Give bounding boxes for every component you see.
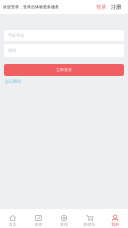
staticText: 我的: [111, 222, 119, 227]
button[interactable]: 发布: [26, 209, 51, 228]
button[interactable]: 注册: [111, 4, 121, 10]
staticText: 手机号码: [8, 33, 24, 38]
button[interactable]: 发现: [51, 209, 77, 228]
button[interactable]: 我的: [102, 209, 128, 228]
button[interactable]: 购物车: [77, 209, 102, 228]
staticText: 忘记密码: [5, 79, 21, 84]
button[interactable]: 登录: [96, 4, 106, 10]
button[interactable]: 忘记密码: [5, 79, 21, 84]
staticText: 发布: [34, 222, 42, 227]
staticText: 登录: [96, 4, 106, 10]
staticText: 首页: [9, 222, 17, 227]
staticText: 购物车: [84, 222, 96, 227]
staticText: 欢迎登录，登录后体验更多服务: [3, 4, 59, 9]
button[interactable]: 首页: [0, 209, 26, 228]
staticText: 密码: [8, 48, 16, 53]
staticText: 注册: [111, 4, 121, 10]
button[interactable]: 立即登录: [4, 64, 124, 76]
staticText: 发现: [60, 222, 68, 227]
staticText: 立即登录: [56, 67, 72, 72]
